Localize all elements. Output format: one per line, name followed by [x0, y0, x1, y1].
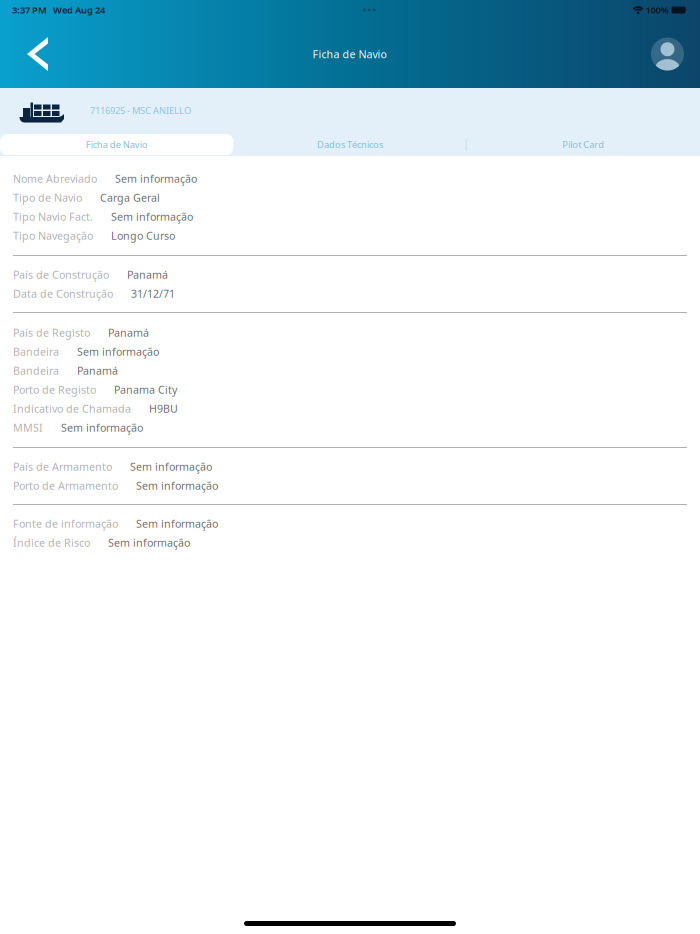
- staticText: Porto de Registo: [13, 382, 96, 397]
- staticText: MMSI: [13, 420, 43, 435]
- staticText: Data de Construção: [13, 286, 113, 301]
- staticText: H9BU: [149, 401, 178, 416]
- staticText: Sem informação: [130, 459, 212, 474]
- staticText: 31/12/71: [131, 286, 175, 301]
- staticText: Porto de Armamento: [13, 478, 118, 493]
- button[interactable]: Dados Técnicos: [233, 133, 467, 156]
- staticText: País de Armamento: [13, 459, 112, 474]
- staticText: 7116925 - MSC ANIELLO: [90, 104, 191, 117]
- staticText: 100%: [646, 4, 669, 16]
- staticText: Tipo Navegação: [13, 228, 93, 243]
- staticText: Carga Geral: [100, 190, 160, 205]
- staticText: Sem informação: [136, 478, 218, 493]
- staticText: 3:37 PM Wed Aug 24: [12, 4, 105, 16]
- staticText: Índice de Risco: [13, 535, 90, 550]
- staticText: Fonte de informação: [13, 516, 118, 531]
- staticText: Bandeira: [13, 363, 59, 378]
- staticText: Ficha de Navio: [86, 138, 148, 151]
- staticText: Tipo Navio Fact.: [13, 209, 93, 224]
- staticText: Tipo de Navio: [13, 190, 82, 205]
- staticText: Nome Abreviado: [13, 171, 97, 186]
- staticText: Indicativo de Chamada: [13, 401, 131, 416]
- button[interactable]: Back: [0, 37, 64, 71]
- staticText: País de Construção: [13, 267, 109, 282]
- button[interactable]: Ficha de Navio: [0, 133, 233, 156]
- button[interactable]: Account: [635, 37, 700, 70]
- staticText: Sem informação: [115, 171, 197, 186]
- staticText: Sem informação: [108, 535, 190, 550]
- staticText: Panamá: [77, 363, 118, 378]
- staticText: Panamá: [108, 325, 149, 340]
- staticText: Panamá: [127, 267, 168, 282]
- staticText: Sem informação: [136, 516, 218, 531]
- staticText: Longo Curso: [111, 228, 175, 243]
- staticText: Ficha de Navio: [312, 47, 386, 61]
- staticText: Dados Técnicos: [317, 138, 383, 151]
- staticText: Pilot Card: [562, 138, 604, 151]
- staticText: País de Registo: [13, 325, 90, 340]
- staticText: Sem informação: [61, 420, 143, 435]
- staticText: Panama City: [114, 382, 177, 397]
- staticText: Bandeira: [13, 344, 59, 359]
- staticText: Sem informação: [77, 344, 159, 359]
- button[interactable]: Pilot Card: [467, 133, 700, 156]
- staticText: Sem informação: [111, 209, 193, 224]
